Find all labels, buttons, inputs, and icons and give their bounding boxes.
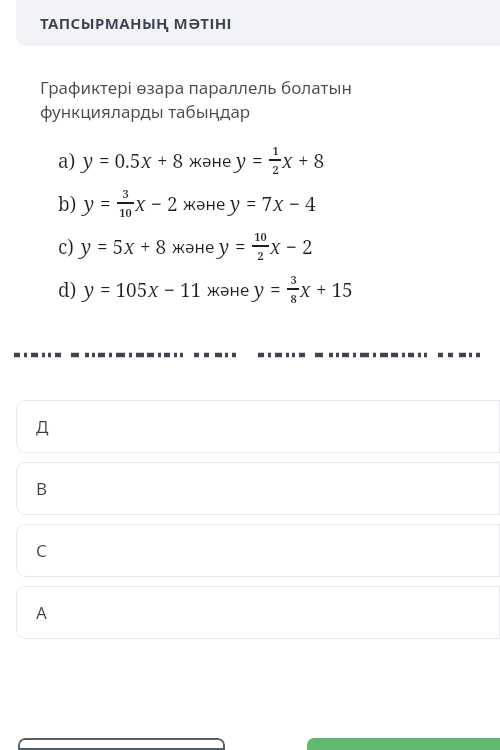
staticText: − 2	[281, 234, 313, 260]
staticText: b)	[58, 191, 77, 217]
staticText: және	[189, 149, 236, 172]
staticText: = 7	[241, 191, 273, 217]
button[interactable]: А	[16, 586, 500, 639]
staticText: 8	[290, 291, 297, 306]
staticText: =	[230, 234, 251, 260]
staticText: d)	[58, 277, 77, 303]
staticText: және	[207, 278, 254, 301]
staticText: x	[135, 191, 146, 217]
staticText: x	[141, 148, 152, 174]
staticText: ТАПСЫРМАНЫҢ МӘТІНІ	[40, 13, 232, 33]
button[interactable]: Д	[16, 400, 500, 453]
staticText: және	[183, 192, 230, 215]
staticText: − 11	[159, 277, 207, 303]
staticText: + 15	[311, 277, 353, 303]
staticText: = 0.5	[94, 148, 141, 174]
staticText: 3	[290, 272, 297, 287]
staticText: + 8	[152, 148, 189, 174]
staticText: =	[95, 191, 116, 217]
staticText: 10	[119, 205, 132, 220]
staticText: x	[148, 277, 159, 303]
staticText: y	[219, 234, 230, 260]
staticText: Графиктері өзара параллель болатын функц…	[40, 76, 352, 123]
staticText: c)	[58, 234, 74, 260]
staticText: + 8	[293, 148, 325, 174]
staticText: =	[247, 148, 268, 174]
staticText: А	[36, 601, 47, 624]
button[interactable]: В	[16, 462, 500, 515]
staticText: y	[84, 277, 95, 303]
button[interactable]: Жауап беру	[307, 738, 500, 750]
staticText: 2	[272, 162, 279, 177]
staticText: x	[282, 148, 293, 174]
staticText: y	[81, 234, 92, 260]
staticText: y	[84, 191, 95, 217]
staticText: x	[124, 234, 135, 260]
staticText: 3	[122, 186, 129, 201]
staticText: және	[172, 235, 219, 258]
staticText: y	[230, 191, 241, 217]
staticText: 10	[254, 229, 267, 244]
staticText: =	[265, 277, 286, 303]
staticText: x	[300, 277, 311, 303]
staticText: В	[36, 477, 48, 500]
staticText: 1	[272, 143, 279, 158]
staticText: 2	[257, 248, 264, 263]
staticText: y	[236, 148, 247, 174]
staticText: y	[83, 148, 94, 174]
staticText: a)	[58, 148, 76, 174]
staticText: − 4	[284, 191, 316, 217]
staticText: С	[36, 539, 47, 562]
button[interactable]: С	[16, 524, 500, 577]
staticText: x	[273, 191, 284, 217]
staticText: − 2	[146, 191, 183, 217]
staticText: = 105	[95, 277, 148, 303]
staticText: + 8	[135, 234, 172, 260]
staticText: = 5	[92, 234, 124, 260]
staticText: Д	[36, 415, 49, 438]
button[interactable]: Көмек	[18, 738, 225, 750]
staticText: y	[254, 277, 265, 303]
staticText: x	[270, 234, 281, 260]
